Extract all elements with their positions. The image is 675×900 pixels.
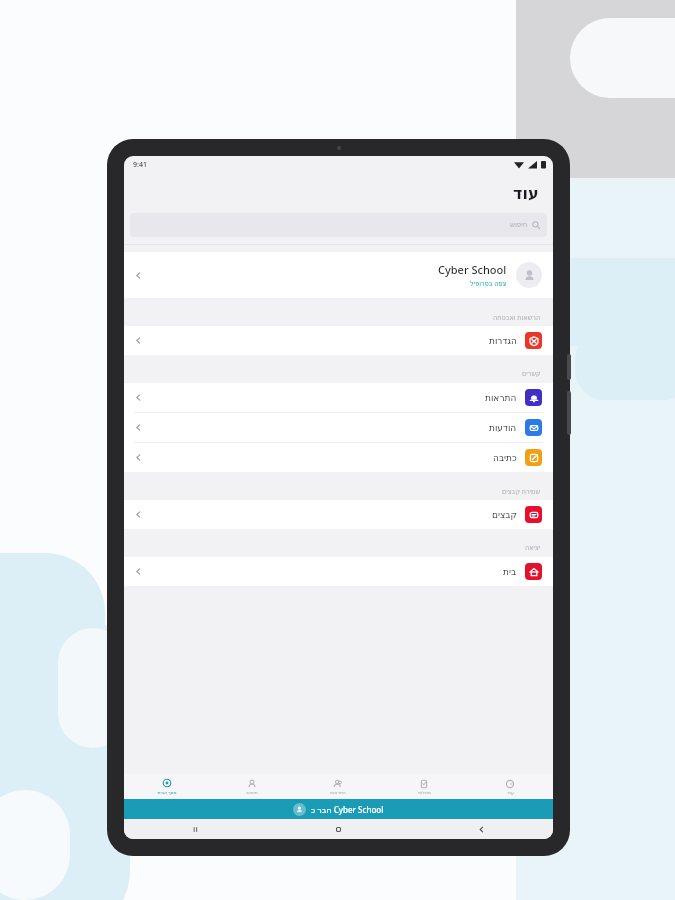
staticText: קבצים [492,510,517,520]
button[interactable]: קבצים [124,500,553,529]
button[interactable]: home [267,819,410,839]
button[interactable]: מסך הבית [124,774,209,799]
button[interactable]: חבר כ Cyber School [124,799,553,819]
button[interactable]: back [410,819,553,839]
button[interactable]: חיפוש [209,774,295,799]
staticText: הגדרות [489,336,517,346]
staticText: בית [503,567,517,577]
staticText: מסך הבית [157,789,177,795]
button[interactable]: בית [124,557,553,586]
staticText: צפה בפרופיל [470,279,507,288]
button[interactable]: Open [124,252,553,298]
button[interactable]: מטלות [381,774,467,799]
staticText: התראות [485,393,517,403]
button[interactable]: כתיבה [124,443,553,472]
button[interactable]: התראות [124,383,553,412]
staticText: התראות [330,790,346,795]
staticText: חיפוש [246,790,258,795]
staticText: כתיבה [493,453,517,463]
staticText: עוד [513,184,539,203]
other: Open [135,272,142,279]
staticText: מטלות [418,790,431,795]
staticText: Cyber School [438,262,507,277]
staticText: שמירת קבצים [502,487,541,496]
staticText: חבר כ Cyber School [311,804,384,815]
staticText: קשרים [522,370,541,378]
button[interactable]: הגדרות [124,326,553,355]
staticText: עוד [507,790,514,795]
button[interactable]: עוד [467,774,553,799]
staticText: יציאה [525,544,541,552]
staticText: הודעות [489,423,517,433]
staticText: חיפוש [510,221,528,229]
staticText: 9:41 [133,160,147,170]
staticText: הרשאות ואבטחה [493,313,541,322]
button[interactable]: הודעות [124,413,553,442]
button[interactable]: התראות [295,774,381,799]
button[interactable]: recent [124,819,267,839]
